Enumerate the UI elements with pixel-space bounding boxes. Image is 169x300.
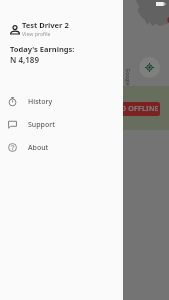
- staticText: Google: [123, 68, 130, 86]
- button[interactable]: History: [0, 90, 123, 113]
- staticText: Today's Earnings:: [10, 44, 75, 54]
- button[interactable]: About: [0, 136, 123, 159]
- staticText: N 4,189: [10, 54, 39, 65]
- staticText: GO OFFLINE: [115, 104, 159, 114]
- button[interactable]: Support: [0, 113, 123, 136]
- staticText: About: [28, 143, 49, 153]
- button[interactable]: GO OFFLINE: [113, 102, 160, 116]
- staticText: History: [28, 97, 53, 107]
- staticText: Support: [28, 120, 55, 130]
- staticText: View profile: [22, 30, 51, 37]
- staticText: Test Driver 2: [22, 20, 69, 30]
- button[interactable]: My location: [139, 57, 160, 78]
